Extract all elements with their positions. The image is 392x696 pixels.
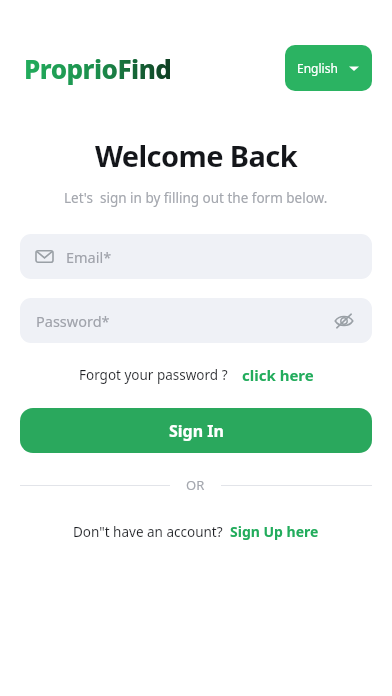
staticText: English [297, 60, 338, 76]
button[interactable]: Sign In [20, 408, 372, 453]
staticText: Don"t have an account? [73, 523, 223, 541]
button[interactable]: Sign Up here [230, 522, 319, 541]
staticText: Sign Up here [230, 522, 319, 541]
staticText: ProprioFind [24, 51, 172, 86]
staticText: click here [242, 365, 314, 385]
button[interactable]: Email* [20, 234, 372, 279]
staticText: Let's sign in by filling out the form be… [64, 189, 328, 207]
button[interactable]: Password* [20, 298, 372, 343]
button[interactable]: click here [242, 365, 314, 385]
button[interactable]: English [285, 45, 372, 91]
button[interactable]: Show password [332, 309, 356, 333]
staticText: Forgot your password ? [79, 366, 228, 384]
staticText: OR [186, 476, 205, 494]
staticText: Sign In [169, 420, 224, 442]
staticText: Welcome Back [95, 136, 298, 175]
staticText: Email* [66, 247, 112, 267]
staticText: Password* [36, 311, 110, 331]
